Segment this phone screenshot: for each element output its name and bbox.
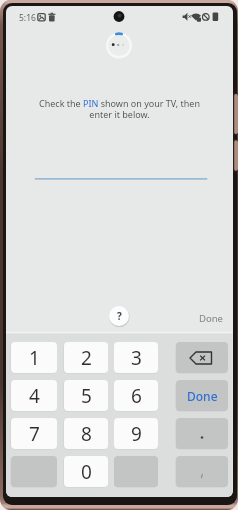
staticText: 4 [29, 383, 40, 409]
button[interactable]: 8 [64, 418, 108, 449]
staticText: 3 [131, 345, 142, 371]
staticText: Done [187, 388, 218, 404]
staticText: 8 [81, 421, 92, 447]
staticText: 1 [29, 345, 40, 371]
staticText: 6 [131, 383, 142, 409]
button[interactable] [176, 418, 228, 449]
staticText: 5 [81, 383, 92, 409]
staticText: 0 [81, 459, 92, 485]
button[interactable]: 1 [11, 342, 57, 373]
button[interactable]: 3 [114, 342, 158, 373]
button[interactable]: Done [176, 380, 228, 411]
staticText: 9 [131, 421, 142, 447]
button[interactable]: Done [199, 312, 223, 325]
staticText: Check the PIN shown on your TV, then ent… [6, 97, 233, 120]
button[interactable]: 4 [11, 380, 57, 411]
button[interactable]: 7 [11, 418, 57, 449]
staticText: 2 [81, 345, 92, 371]
staticText: 7 [29, 421, 40, 447]
staticText: ? [117, 309, 122, 323]
button[interactable]: ? [109, 306, 129, 326]
button[interactable]: 6 [114, 380, 158, 411]
button[interactable]: 9 [114, 418, 158, 449]
button[interactable]: 5 [64, 380, 108, 411]
button[interactable]: 2 [64, 342, 108, 373]
button[interactable]: 0 [64, 456, 108, 487]
staticText: 5:16 [19, 12, 36, 24]
button[interactable] [176, 342, 228, 373]
